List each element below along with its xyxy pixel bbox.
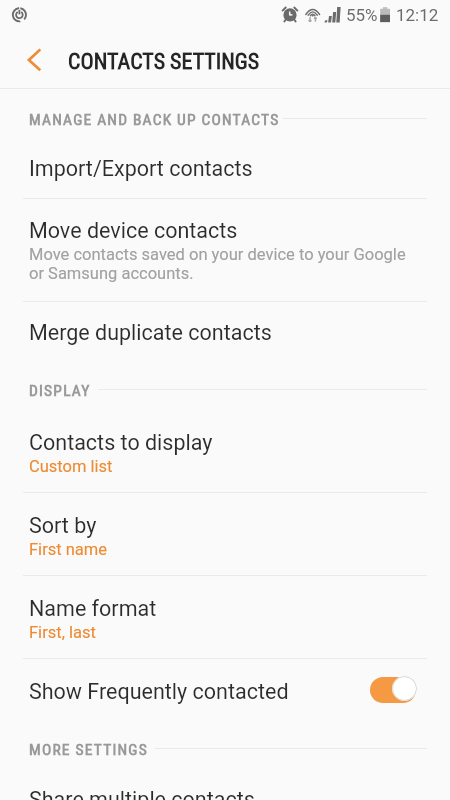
button[interactable]: Import/Export contacts <box>0 89 450 198</box>
staticText: Move device contacts <box>29 218 238 243</box>
staticText: First, last <box>29 623 96 642</box>
button[interactable]: Navigate up <box>8 36 56 84</box>
staticText: First name <box>29 540 108 559</box>
button[interactable]: Share multiple contacts <box>0 768 450 800</box>
staticText: Share multiple contacts <box>29 787 255 800</box>
staticText: CONTACTS SETTINGS <box>68 49 260 75</box>
staticText: MANAGE AND BACK UP CONTACTS <box>29 111 280 129</box>
staticText: 55% <box>346 5 378 25</box>
staticText: Show Frequently contacted <box>29 679 289 704</box>
staticText: 12:12 <box>396 5 439 25</box>
button[interactable]: Sort by <box>0 492 450 575</box>
button[interactable]: Name format <box>0 575 450 658</box>
button[interactable]: Show Frequently contacted <box>0 658 450 722</box>
staticText: Import/Export contacts <box>29 156 253 181</box>
staticText: Sort by <box>29 513 97 538</box>
staticText: Move contacts saved on your device to yo… <box>29 245 411 283</box>
staticText: Name format <box>29 596 157 621</box>
button[interactable]: Merge duplicate contacts <box>0 301 450 365</box>
staticText: DISPLAY <box>29 382 91 400</box>
staticText: Merge duplicate contacts <box>29 320 272 345</box>
staticText: Contacts to display <box>29 430 213 455</box>
staticText: Custom list <box>29 457 113 476</box>
staticText: MORE SETTINGS <box>29 741 148 759</box>
button[interactable]: Contacts to display <box>0 410 450 492</box>
button[interactable]: Move device contacts <box>0 198 450 301</box>
